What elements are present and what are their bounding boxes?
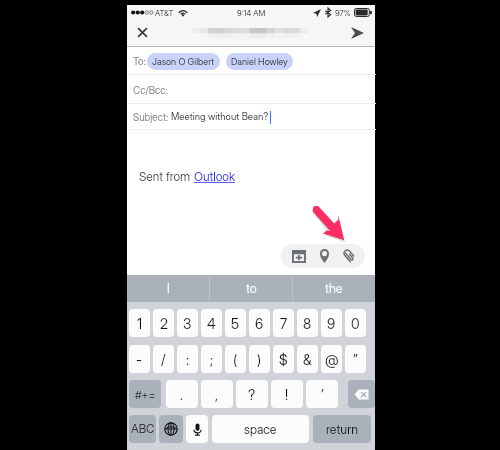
button[interactable]: :: [177, 345, 198, 373]
button[interactable]: 4: [201, 309, 222, 337]
staticText: To:: [133, 55, 146, 67]
button[interactable]: Cc/Bcc:: [127, 75, 375, 104]
button[interactable]: Dictation: [186, 415, 208, 443]
button[interactable]: @: [321, 345, 342, 373]
staticText: ,: [215, 386, 219, 403]
staticText: $: [279, 351, 288, 368]
staticText: 2: [160, 315, 168, 332]
button[interactable]: ?: [236, 380, 268, 408]
staticText: @: [325, 351, 339, 368]
staticText: Cc/Bcc:: [133, 84, 168, 96]
staticText: return: [326, 422, 358, 437]
button[interactable]: 5: [225, 309, 246, 337]
staticText: 1: [137, 315, 143, 332]
button[interactable]: I: [127, 275, 209, 302]
button[interactable]: &: [297, 345, 318, 373]
button[interactable]: !: [271, 380, 303, 408]
button[interactable]: to: [210, 275, 292, 302]
staticText: Outlook: [194, 169, 236, 184]
button[interactable]: ABC: [129, 415, 156, 443]
staticText: &: [303, 351, 312, 368]
staticText: 8: [303, 315, 312, 332]
staticText: #+=: [135, 388, 156, 401]
staticText: ’: [321, 386, 324, 403]
staticText: 9:14 AM: [237, 8, 266, 18]
staticText: to: [246, 281, 257, 296]
button[interactable]: Switch keyboard: [159, 415, 183, 443]
button[interactable]: #+=: [129, 380, 161, 408]
button[interactable]: ’: [306, 380, 338, 408]
staticText: Daniel Howley: [231, 56, 288, 67]
staticText: the: [325, 281, 343, 296]
button[interactable]: Subject:: [127, 104, 375, 130]
button[interactable]: the: [293, 275, 375, 302]
button[interactable]: .: [166, 380, 198, 408]
staticText: 9: [327, 315, 336, 332]
button[interactable]: Backspace: [348, 380, 375, 408]
staticText: :: [186, 351, 190, 368]
staticText: 0: [351, 315, 360, 332]
staticText: Subject:: [133, 111, 169, 123]
staticText: Meeting without Bean?: [171, 111, 269, 123]
staticText: ?: [248, 386, 256, 403]
staticText: 4: [207, 315, 216, 332]
button[interactable]: 7: [273, 309, 294, 337]
staticText: AT&T: [155, 8, 174, 18]
staticText: 6: [255, 315, 264, 332]
button[interactable]: ): [249, 345, 270, 373]
button[interactable]: 3: [177, 309, 198, 337]
button[interactable]: 6: [249, 309, 270, 337]
button[interactable]: Location: [312, 244, 336, 268]
staticText: 5: [231, 315, 240, 332]
button[interactable]: space: [212, 415, 309, 443]
button[interactable]: 8: [297, 309, 318, 337]
staticText: 3: [183, 315, 192, 332]
button[interactable]: ;: [201, 345, 222, 373]
button[interactable]: Add event: [287, 244, 311, 268]
button[interactable]: Daniel Howley: [226, 53, 293, 70]
staticText: -: [136, 351, 143, 368]
button[interactable]: ”: [345, 345, 366, 373]
button[interactable]: 2: [153, 309, 174, 337]
staticText: .: [180, 386, 184, 403]
button[interactable]: return: [313, 415, 371, 443]
staticText: ABC: [131, 422, 155, 436]
button[interactable]: /: [153, 345, 174, 373]
staticText: ”: [353, 351, 358, 368]
button[interactable]: -: [129, 345, 150, 373]
staticText: Sent from: [139, 169, 194, 184]
staticText: !: [285, 386, 289, 403]
staticText: ): [257, 351, 262, 368]
button[interactable]: Attach file: [337, 244, 361, 268]
staticText: ;: [210, 351, 214, 368]
staticText: 7: [280, 315, 288, 332]
button[interactable]: 9: [321, 309, 342, 337]
button[interactable]: To:: [127, 47, 375, 75]
button[interactable]: Jason O Gilbert: [147, 53, 220, 70]
button[interactable]: (: [225, 345, 246, 373]
button[interactable]: Send: [345, 20, 369, 47]
staticText: 97%: [335, 8, 351, 18]
staticText: space: [244, 422, 277, 437]
button[interactable]: ,: [201, 380, 233, 408]
button[interactable]: $: [273, 345, 294, 373]
button[interactable]: 0: [345, 309, 366, 337]
staticText: (: [233, 351, 238, 368]
button[interactable]: 1: [129, 309, 150, 337]
staticText: /: [161, 351, 166, 368]
staticText: I: [167, 281, 170, 296]
staticText: Jason O Gilbert: [152, 56, 215, 67]
button[interactable]: Close: [127, 20, 157, 47]
